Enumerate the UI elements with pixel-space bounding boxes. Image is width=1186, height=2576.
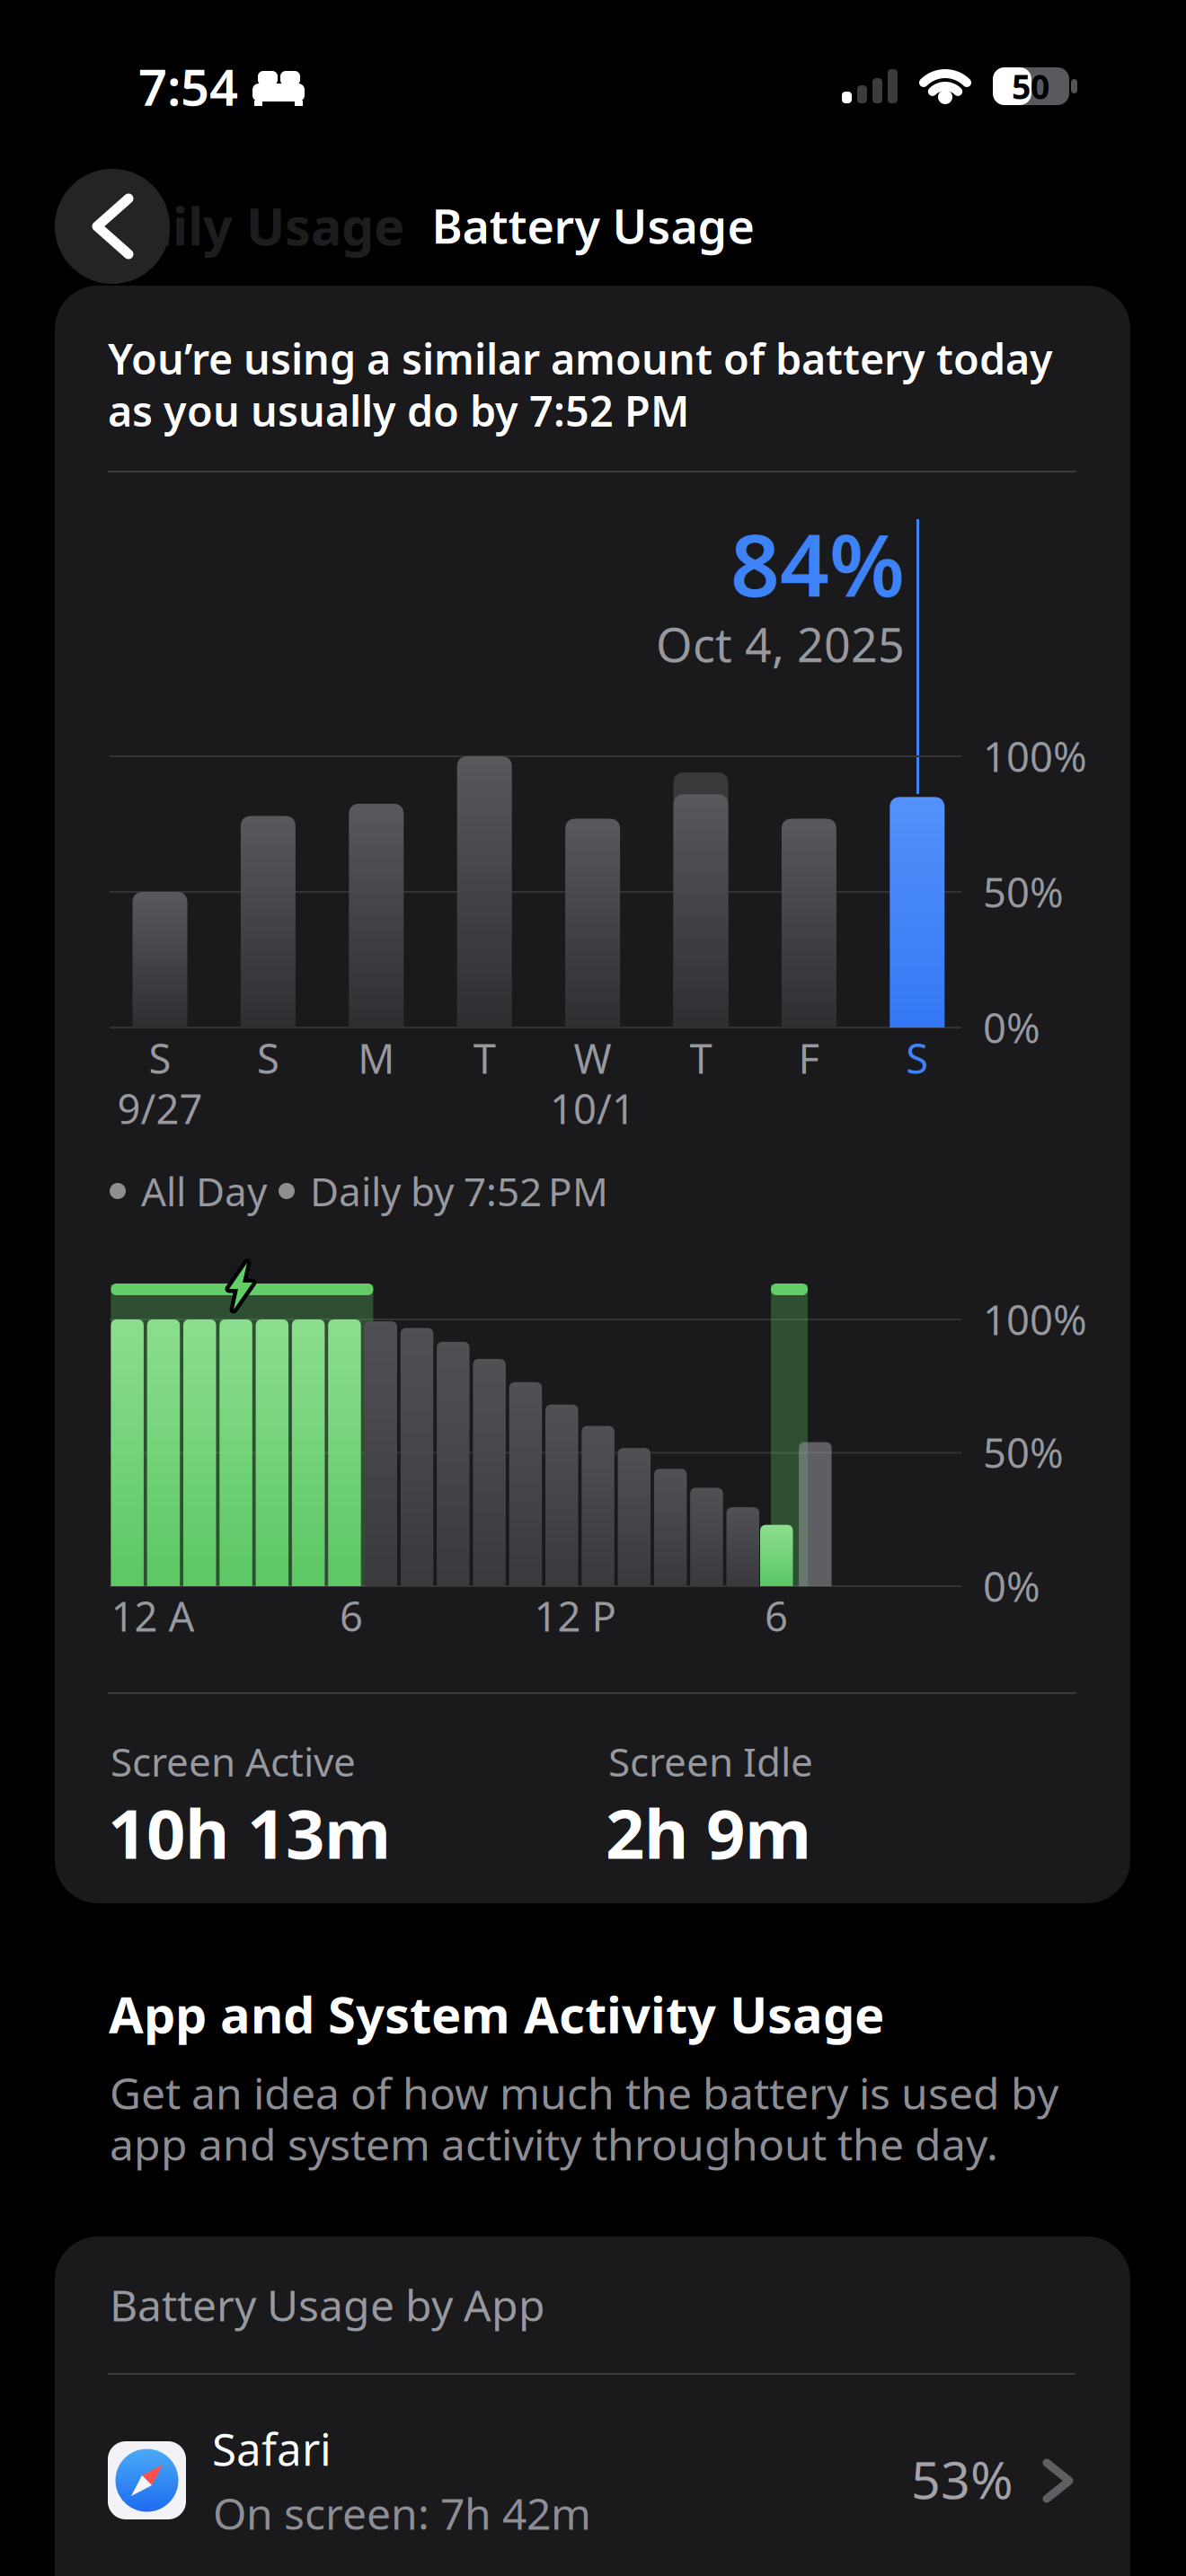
staticText: You’re using a similar amount of battery… (108, 331, 1053, 386)
staticText: 12 P (534, 1589, 616, 1643)
staticText: 10/1 (550, 1081, 635, 1135)
staticText: All Day (141, 1165, 267, 1217)
staticText: App and System Activity Usage (109, 1980, 884, 2047)
staticText: app and system activity throughout the d… (110, 2115, 998, 2173)
staticText: 100% (983, 729, 1087, 783)
staticText: Screen Idle (608, 1735, 813, 1788)
staticText: Battery Usage by App (110, 2276, 545, 2333)
staticText: Daily by 7:52 PM (310, 1165, 608, 1217)
staticText: 50% (983, 1425, 1064, 1479)
staticText: T (690, 1031, 712, 1085)
staticText: Oct 4, 2025 (656, 613, 905, 675)
staticText: 2h 9m (606, 1787, 811, 1878)
staticText: 9/27 (117, 1081, 203, 1135)
staticText: S (257, 1031, 279, 1085)
staticText: 84% (730, 506, 905, 620)
staticText: 0% (983, 1559, 1040, 1613)
button[interactable]: Safari (55, 2411, 1130, 2576)
staticText: T (473, 1031, 496, 1085)
staticText: M (358, 1031, 395, 1085)
staticText: Screen Active (111, 1735, 356, 1788)
staticText: 6 (765, 1589, 788, 1643)
staticText: as you usually do by 7:52 PM (108, 383, 689, 438)
staticText: Safari (212, 2419, 332, 2478)
staticText: S (906, 1031, 928, 1085)
staticText: F (798, 1031, 820, 1085)
staticText: On screen: 7h 42m (213, 2484, 591, 2542)
staticText: Battery Usage (432, 194, 754, 257)
staticText: W (574, 1031, 612, 1085)
staticText: 7:54 (138, 53, 238, 120)
staticText: 50 (1012, 64, 1049, 109)
staticText: Get an idea of how much the battery is u… (110, 2064, 1058, 2121)
button[interactable] (55, 169, 170, 284)
staticText: 0% (983, 1000, 1040, 1055)
staticText: 12 A (111, 1589, 195, 1643)
staticText: Daily Usage (104, 191, 404, 260)
staticText: 50% (983, 865, 1064, 919)
staticText: 6 (340, 1589, 363, 1643)
staticText: 10h 13m (108, 1787, 391, 1878)
staticText: S (149, 1031, 171, 1085)
staticText: 53% (911, 2445, 1013, 2513)
staticText: 100% (983, 1292, 1087, 1346)
